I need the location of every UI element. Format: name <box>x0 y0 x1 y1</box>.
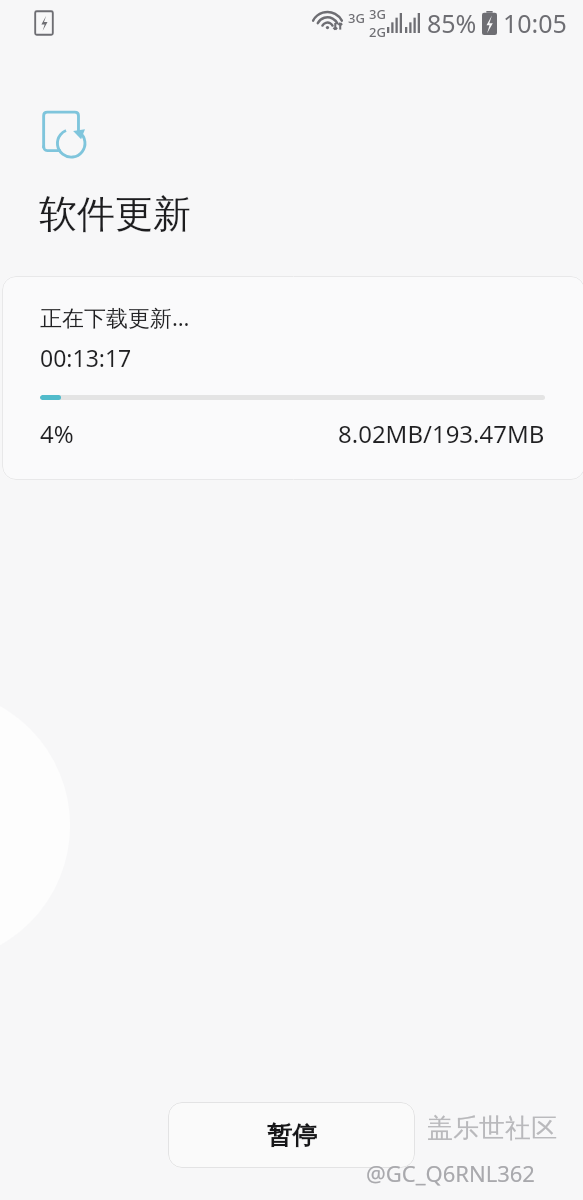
staticText: 8.02MB/193.47MB <box>338 417 545 450</box>
staticText: 10:05 <box>503 6 567 40</box>
staticText: 3G <box>348 9 365 27</box>
staticText: 软件更新 <box>39 190 191 238</box>
staticText: 正在下载更新… <box>40 302 190 332</box>
staticText: 85% <box>427 6 477 40</box>
staticText: 3G <box>369 5 386 23</box>
button[interactable]: 暂停 <box>168 1102 415 1168</box>
staticText: 2G <box>369 23 386 41</box>
staticText: 盖乐世社区 <box>427 1112 557 1145</box>
staticText: 4% <box>40 417 74 450</box>
staticText: @GC_Q6RNL362 <box>366 1158 535 1188</box>
staticText: 00:13:17 <box>40 342 132 373</box>
staticText: 暂停 <box>267 1120 317 1151</box>
